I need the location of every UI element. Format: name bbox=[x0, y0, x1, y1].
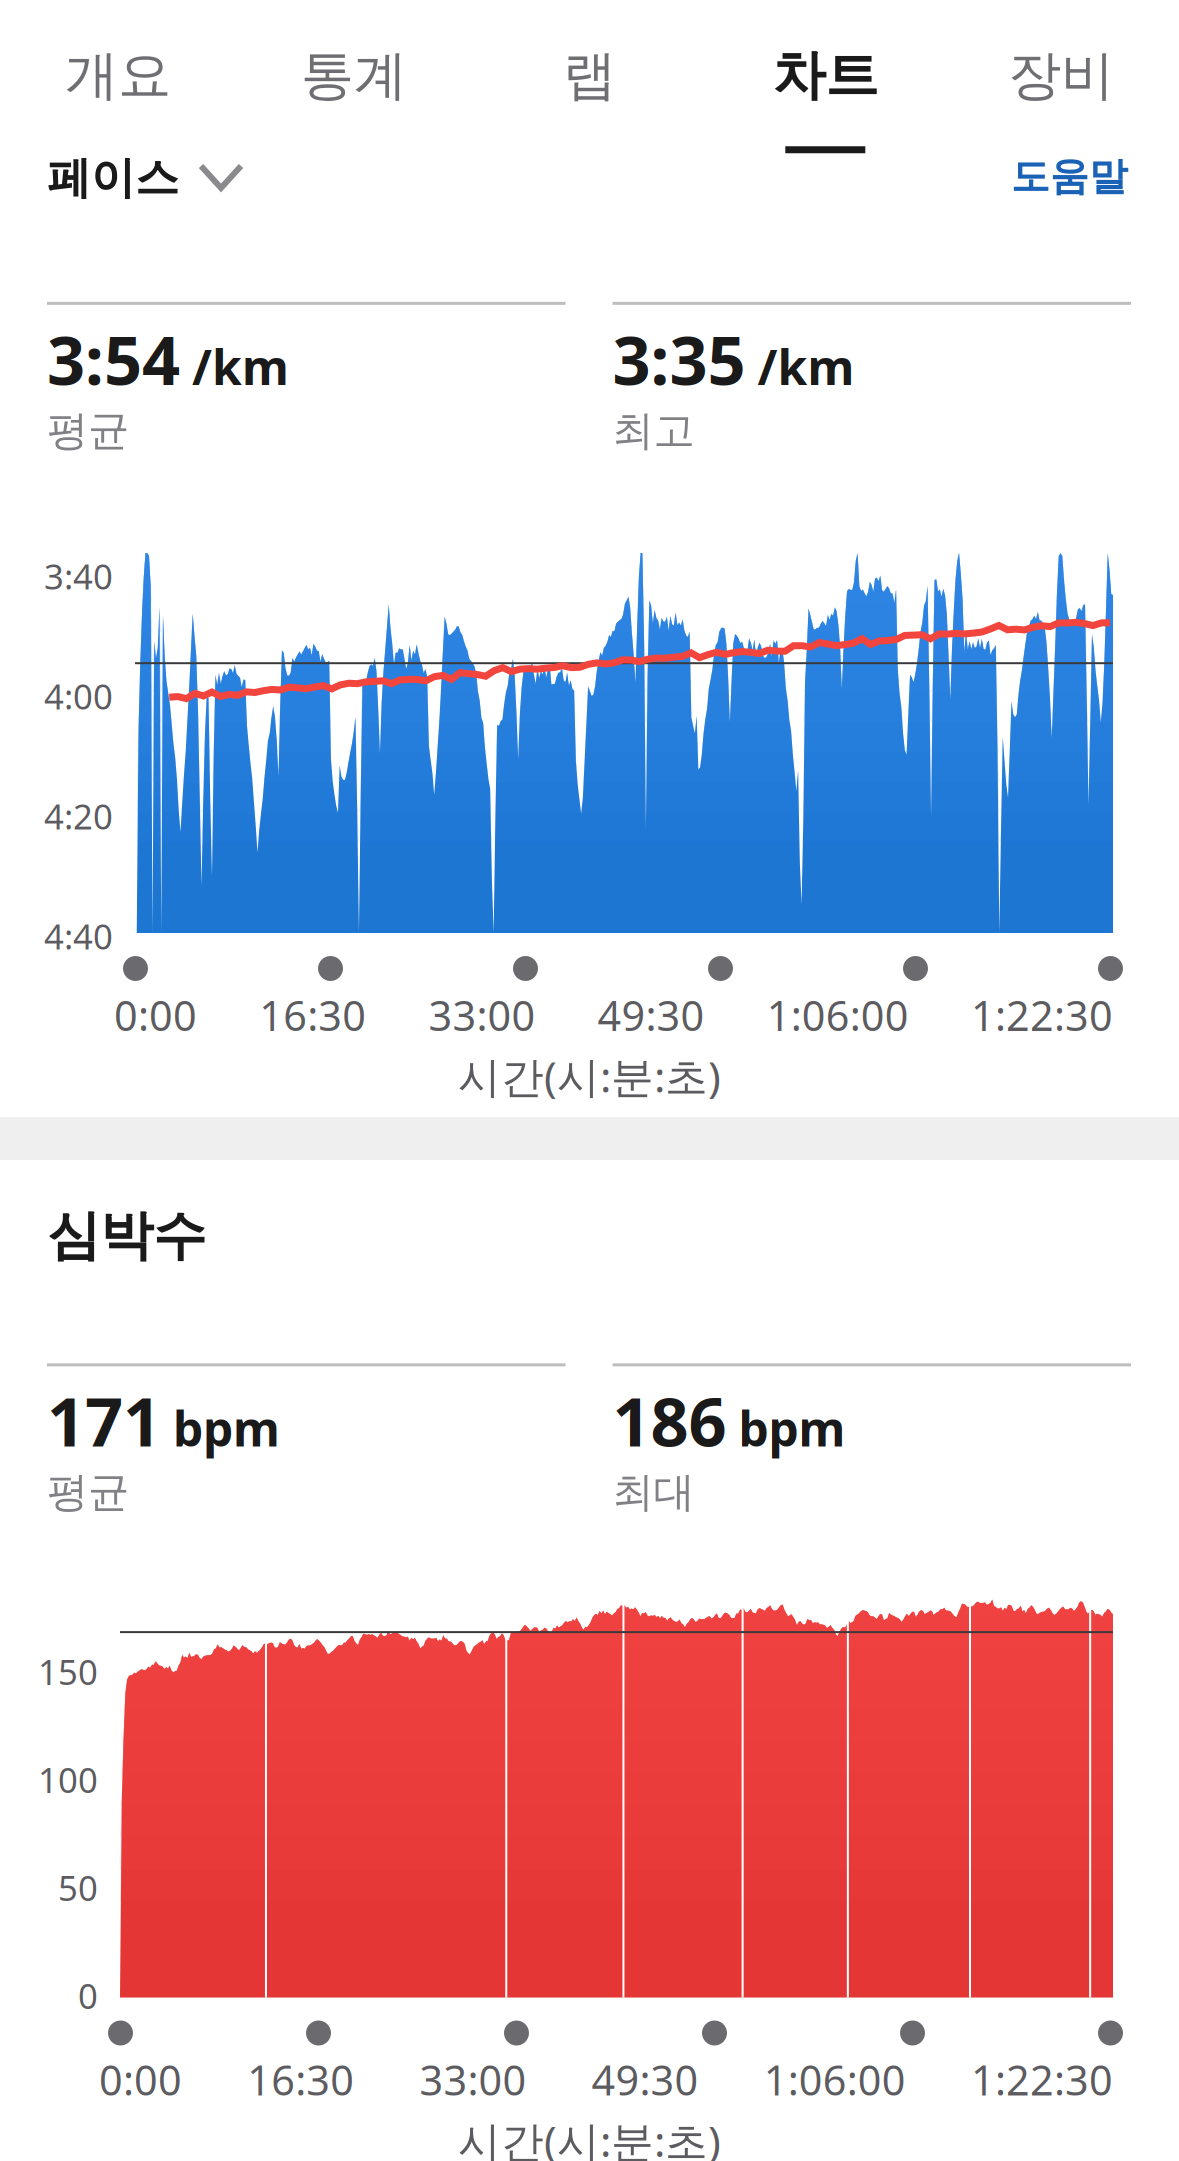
staticText: bpm bbox=[173, 1396, 280, 1460]
staticText: 1:06:00 bbox=[767, 988, 909, 1042]
staticText: 0 bbox=[78, 1972, 98, 2018]
staticText: 186 bbox=[612, 1376, 726, 1465]
staticText: 개요 bbox=[65, 43, 171, 108]
button[interactable]: 개요 bbox=[0, 0, 236, 150]
staticText: 장비 bbox=[1008, 43, 1114, 108]
staticText: 4:00 bbox=[44, 673, 113, 719]
staticText: 평균 bbox=[47, 1467, 129, 1518]
button[interactable]: 도움말 bbox=[1011, 150, 1179, 210]
staticText: 33:00 bbox=[419, 2052, 526, 2107]
staticText: 0:00 bbox=[114, 988, 197, 1042]
staticText: 50 bbox=[58, 1864, 98, 1910]
staticText: 49:30 bbox=[598, 988, 705, 1042]
staticText: 33:00 bbox=[428, 988, 535, 1042]
staticText: bpm bbox=[738, 1396, 845, 1460]
staticText: 49:30 bbox=[592, 2052, 699, 2107]
staticText: 150 bbox=[38, 1648, 98, 1694]
staticText: 100 bbox=[38, 1756, 98, 1802]
staticText: 1:22:30 bbox=[971, 2052, 1113, 2107]
staticText: /km bbox=[757, 334, 854, 398]
staticText: 랩 bbox=[563, 43, 616, 108]
staticText: 시간(시:분:초) bbox=[458, 2112, 721, 2161]
staticText: 최대 bbox=[612, 1467, 694, 1518]
staticText: 페이스 bbox=[47, 151, 179, 205]
button[interactable]: 랩 bbox=[472, 0, 707, 150]
staticText: 16:30 bbox=[259, 988, 366, 1042]
button[interactable]: 통계 bbox=[236, 0, 472, 150]
staticText: 16:30 bbox=[247, 2052, 354, 2107]
staticText: 3:35 bbox=[612, 315, 745, 403]
button[interactable]: 페이스 bbox=[0, 150, 259, 215]
staticText: 심박수 bbox=[47, 1203, 206, 1268]
staticText: 3:54 bbox=[47, 315, 180, 403]
staticText: 시간(시:분:초) bbox=[458, 1048, 721, 1104]
staticText: 최고 bbox=[612, 405, 694, 456]
staticText: 0:00 bbox=[99, 2052, 182, 2107]
staticText: 1:22:30 bbox=[971, 988, 1113, 1042]
staticText: /km bbox=[192, 334, 289, 398]
staticText: 3:40 bbox=[44, 553, 113, 599]
staticText: 도움말 bbox=[1011, 153, 1128, 200]
staticText: 1:06:00 bbox=[764, 2052, 906, 2107]
button[interactable]: 장비 bbox=[943, 0, 1179, 150]
staticText: 평균 bbox=[47, 405, 129, 456]
staticText: 171 bbox=[47, 1376, 161, 1465]
button[interactable]: 차트 bbox=[707, 0, 943, 150]
staticText: 차트 bbox=[772, 43, 878, 108]
staticText: 통계 bbox=[301, 43, 407, 108]
staticText: 4:20 bbox=[44, 793, 113, 839]
staticText: 4:40 bbox=[44, 913, 113, 959]
